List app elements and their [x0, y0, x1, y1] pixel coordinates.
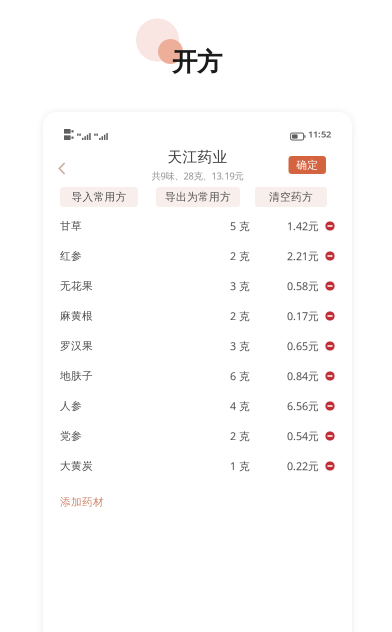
staticText: 添加药材	[60, 495, 104, 508]
staticText: 人参	[60, 399, 82, 412]
staticText: 开方	[172, 46, 222, 78]
staticText: 6.56元	[287, 399, 319, 413]
staticText: 导入常用方	[71, 190, 126, 203]
button[interactable]: 添加药材	[43, 481, 352, 523]
staticText: 2 克	[230, 309, 250, 323]
staticText: 导出为常用方	[165, 190, 231, 203]
staticText: 大黄炭	[60, 459, 93, 472]
button[interactable]: 党参	[43, 421, 352, 451]
staticText: 麻黄根	[60, 309, 93, 322]
staticText: 1 克	[230, 459, 250, 473]
staticText: 3 克	[230, 279, 250, 293]
staticText: 1.42元	[287, 219, 319, 233]
staticText: 11:52	[308, 128, 331, 140]
button[interactable]: 麻黄根	[43, 301, 352, 331]
staticText: 0.84元	[287, 369, 319, 383]
staticText: 2.21元	[287, 249, 319, 263]
button[interactable]: 罗汉果	[43, 331, 352, 361]
staticText: 0.17元	[287, 309, 319, 323]
staticText: 0.22元	[287, 459, 319, 473]
staticText: 0.58元	[287, 279, 319, 293]
button[interactable]: 甘草	[43, 211, 352, 241]
button[interactable]: 大黄炭	[43, 451, 352, 481]
staticText: 清空药方	[269, 190, 313, 203]
staticText: 3 克	[230, 339, 250, 353]
staticText: 甘草	[60, 219, 82, 232]
staticText: 无花果	[60, 279, 93, 292]
button[interactable]: 人参	[43, 391, 352, 421]
staticText: 0.65元	[287, 339, 319, 353]
button[interactable]: 确定	[288, 156, 326, 174]
staticText: 2 克	[230, 429, 250, 443]
staticText: 罗汉果	[60, 339, 93, 352]
button[interactable]: 地肤子	[43, 361, 352, 391]
button[interactable]: 红参	[43, 241, 352, 271]
staticText: 0.54元	[287, 429, 319, 443]
staticText: 共9味、28克、13.19元	[151, 170, 243, 182]
button[interactable]: 返回	[47, 153, 77, 183]
staticText: 地肤子	[60, 369, 93, 382]
staticText: 5 克	[230, 219, 250, 233]
button[interactable]: 导出为常用方	[156, 187, 240, 207]
button[interactable]: 清空药方	[255, 187, 327, 207]
staticText: 4 克	[230, 399, 250, 413]
staticText: 6 克	[230, 369, 250, 383]
staticText: 红参	[60, 249, 82, 262]
staticText: 2 克	[230, 249, 250, 263]
button[interactable]: 无花果	[43, 271, 352, 301]
staticText: 确定	[296, 158, 318, 171]
staticText: 天江药业	[167, 148, 227, 166]
staticText: 党参	[60, 429, 82, 442]
button[interactable]: 导入常用方	[60, 187, 138, 207]
